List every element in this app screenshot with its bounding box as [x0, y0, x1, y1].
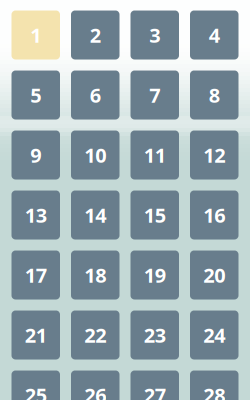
button[interactable]: 7 [130, 70, 179, 119]
button[interactable]: 20 [190, 250, 238, 299]
staticText: 7 [149, 82, 160, 108]
button[interactable]: 19 [130, 250, 179, 299]
button[interactable]: 21 [11, 310, 60, 359]
staticText: 24 [203, 322, 225, 348]
staticText: 21 [25, 322, 47, 348]
staticText: 26 [84, 382, 106, 400]
staticText: 9 [30, 142, 41, 168]
staticText: 27 [144, 382, 166, 400]
button[interactable]: 26 [71, 370, 119, 400]
button[interactable]: 3 [130, 10, 179, 59]
staticText: 12 [203, 142, 225, 168]
staticText: 18 [84, 262, 106, 288]
staticText: 2 [90, 22, 101, 48]
button[interactable]: 24 [190, 310, 238, 359]
button[interactable]: 2 [71, 10, 119, 59]
staticText: 25 [25, 382, 47, 400]
button[interactable]: 6 [71, 70, 119, 119]
button[interactable]: 27 [130, 370, 179, 400]
button[interactable]: 4 [190, 10, 238, 59]
staticText: 8 [209, 82, 220, 108]
staticText: 3 [149, 22, 160, 48]
button[interactable]: 15 [130, 190, 179, 239]
staticText: 6 [90, 82, 101, 108]
staticText: 19 [144, 262, 166, 288]
button[interactable]: 11 [130, 130, 179, 179]
staticText: 4 [209, 22, 220, 48]
staticText: 20 [203, 262, 225, 288]
button[interactable]: 23 [130, 310, 179, 359]
button[interactable]: 25 [11, 370, 60, 400]
button[interactable]: 17 [11, 250, 60, 299]
staticText: 5 [30, 82, 41, 108]
button[interactable]: 9 [11, 130, 60, 179]
button[interactable]: 8 [190, 70, 238, 119]
staticText: 16 [203, 202, 225, 228]
button[interactable]: 14 [71, 190, 119, 239]
button[interactable]: 22 [71, 310, 119, 359]
staticText: 28 [203, 382, 225, 400]
button[interactable]: 18 [71, 250, 119, 299]
button[interactable]: 10 [71, 130, 119, 179]
staticText: 1 [30, 22, 41, 48]
button[interactable]: 13 [11, 190, 60, 239]
staticText: 10 [84, 142, 106, 168]
button[interactable]: 1 [11, 10, 60, 59]
staticText: 11 [144, 142, 166, 168]
button[interactable]: 12 [190, 130, 238, 179]
staticText: 17 [25, 262, 47, 288]
button[interactable]: 28 [190, 370, 238, 400]
button[interactable]: 5 [11, 70, 60, 119]
staticText: 22 [84, 322, 106, 348]
button[interactable]: 16 [190, 190, 238, 239]
staticText: 15 [144, 202, 166, 228]
staticText: 14 [84, 202, 106, 228]
staticText: 23 [144, 322, 166, 348]
staticText: 13 [25, 202, 47, 228]
